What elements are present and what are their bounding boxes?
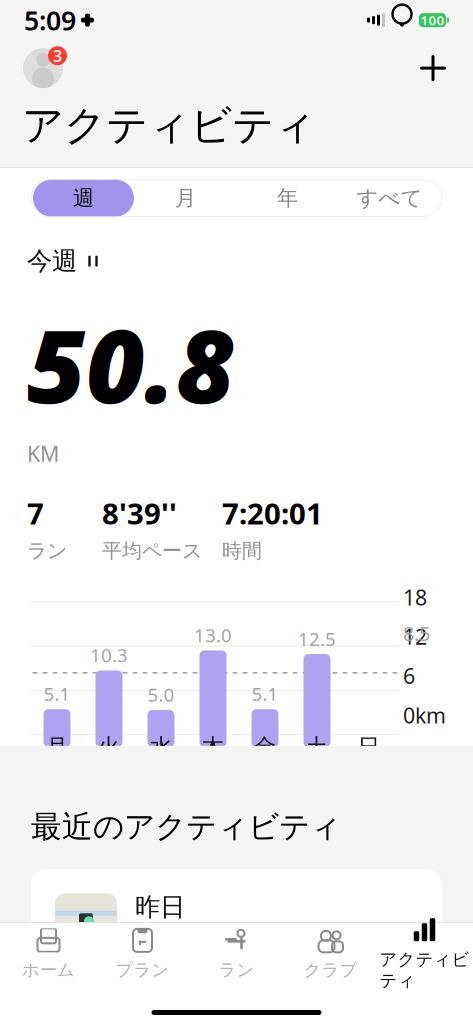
button[interactable]: 今週 — [27, 242, 101, 281]
staticText: 最近のアクティビティ — [31, 808, 341, 846]
staticText: 5.1 — [251, 681, 278, 706]
staticText: 5:09 — [24, 2, 76, 38]
staticText: 土 — [305, 733, 328, 761]
staticText: 5.1 — [43, 681, 70, 706]
staticText: アクティビティ — [379, 949, 469, 991]
staticText: ラン — [218, 959, 254, 981]
staticText: 4.2 KM・ラン — [135, 929, 268, 957]
staticText: 今週 — [27, 246, 77, 277]
staticText: KM — [27, 439, 59, 468]
staticText: 7:20:01 — [222, 494, 323, 533]
staticText: プラン — [115, 959, 169, 981]
button[interactable]: 昨日 — [31, 870, 442, 979]
staticText: 10.3 — [90, 643, 128, 667]
staticText: 13.0 — [194, 623, 232, 647]
button[interactable]: プラン — [95, 924, 189, 984]
staticText: クラブ — [303, 959, 357, 981]
staticText: 0km — [403, 701, 446, 729]
button[interactable]: アクティビティ — [377, 924, 471, 984]
staticText: 6 — [403, 662, 415, 690]
staticText: ホーム — [22, 959, 75, 981]
staticText: 木 — [201, 733, 224, 761]
staticText: 金 — [253, 733, 276, 761]
button[interactable]: すべて — [338, 180, 440, 217]
staticText: 50.8 — [27, 297, 235, 431]
button[interactable]: 月 — [134, 180, 236, 217]
staticText: 月 — [175, 185, 196, 211]
staticText: 日 — [357, 733, 380, 761]
staticText: 3 — [53, 45, 62, 66]
staticText: 年 — [277, 185, 298, 211]
staticText: 18 — [403, 583, 427, 611]
button[interactable]: ホーム — [1, 924, 95, 984]
staticText: 水 — [149, 733, 172, 761]
staticText: 月 — [45, 733, 68, 761]
button[interactable]: 週 — [32, 180, 134, 217]
staticText: すべて — [356, 185, 422, 211]
staticText: 12 — [403, 622, 427, 651]
staticText: 100 — [420, 11, 444, 29]
staticText: 昨日 — [135, 892, 185, 923]
staticText: 8'39'' — [102, 494, 177, 533]
staticText: 12.5 — [298, 626, 336, 651]
button[interactable]: Profile, 3 notifications — [18, 45, 68, 91]
staticText: アクティビティ — [22, 100, 316, 151]
staticText: 週 — [73, 185, 94, 211]
staticText: 8.5 — [403, 620, 430, 647]
staticText: 7 — [27, 494, 44, 533]
staticText: 火 — [97, 733, 120, 761]
button[interactable]: Add — [411, 46, 455, 90]
staticText: 平均ペース — [102, 539, 202, 563]
staticText: 5.0 — [147, 682, 174, 707]
button[interactable]: 年 — [236, 180, 338, 217]
button[interactable]: ラン — [189, 924, 283, 984]
staticText: ラン — [27, 539, 67, 563]
button[interactable]: クラブ — [283, 924, 377, 984]
staticText: 時間 — [222, 539, 262, 563]
